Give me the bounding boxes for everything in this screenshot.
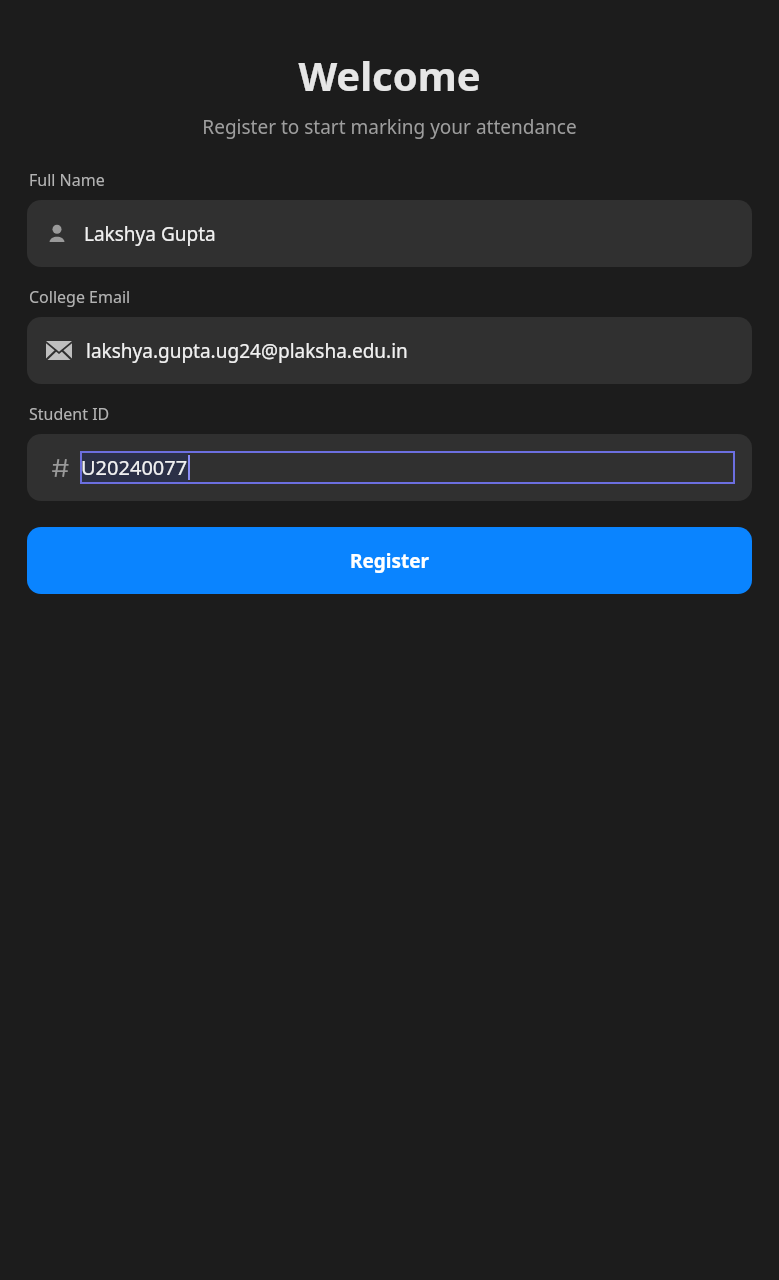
button[interactable]: Student ID bbox=[27, 434, 752, 501]
staticText: Student ID bbox=[29, 403, 110, 425]
staticText: Full Name bbox=[29, 169, 105, 191]
staticText: Register to start marking your attendanc… bbox=[0, 114, 779, 140]
button[interactable]: Email bbox=[27, 317, 752, 384]
button[interactable]: Person bbox=[27, 200, 752, 267]
other: Student ID bbox=[48, 455, 74, 481]
staticText: lakshya.gupta.ug24@plaksha.edu.in bbox=[86, 338, 408, 364]
staticText: Register bbox=[350, 548, 430, 574]
staticText: Welcome bbox=[0, 48, 779, 102]
staticText: U20240077 bbox=[81, 454, 188, 481]
staticText: College Email bbox=[29, 286, 131, 308]
other: Person bbox=[46, 223, 68, 245]
other: Email bbox=[46, 341, 72, 360]
staticText: Lakshya Gupta bbox=[84, 221, 216, 247]
button[interactable]: Register bbox=[27, 527, 752, 594]
